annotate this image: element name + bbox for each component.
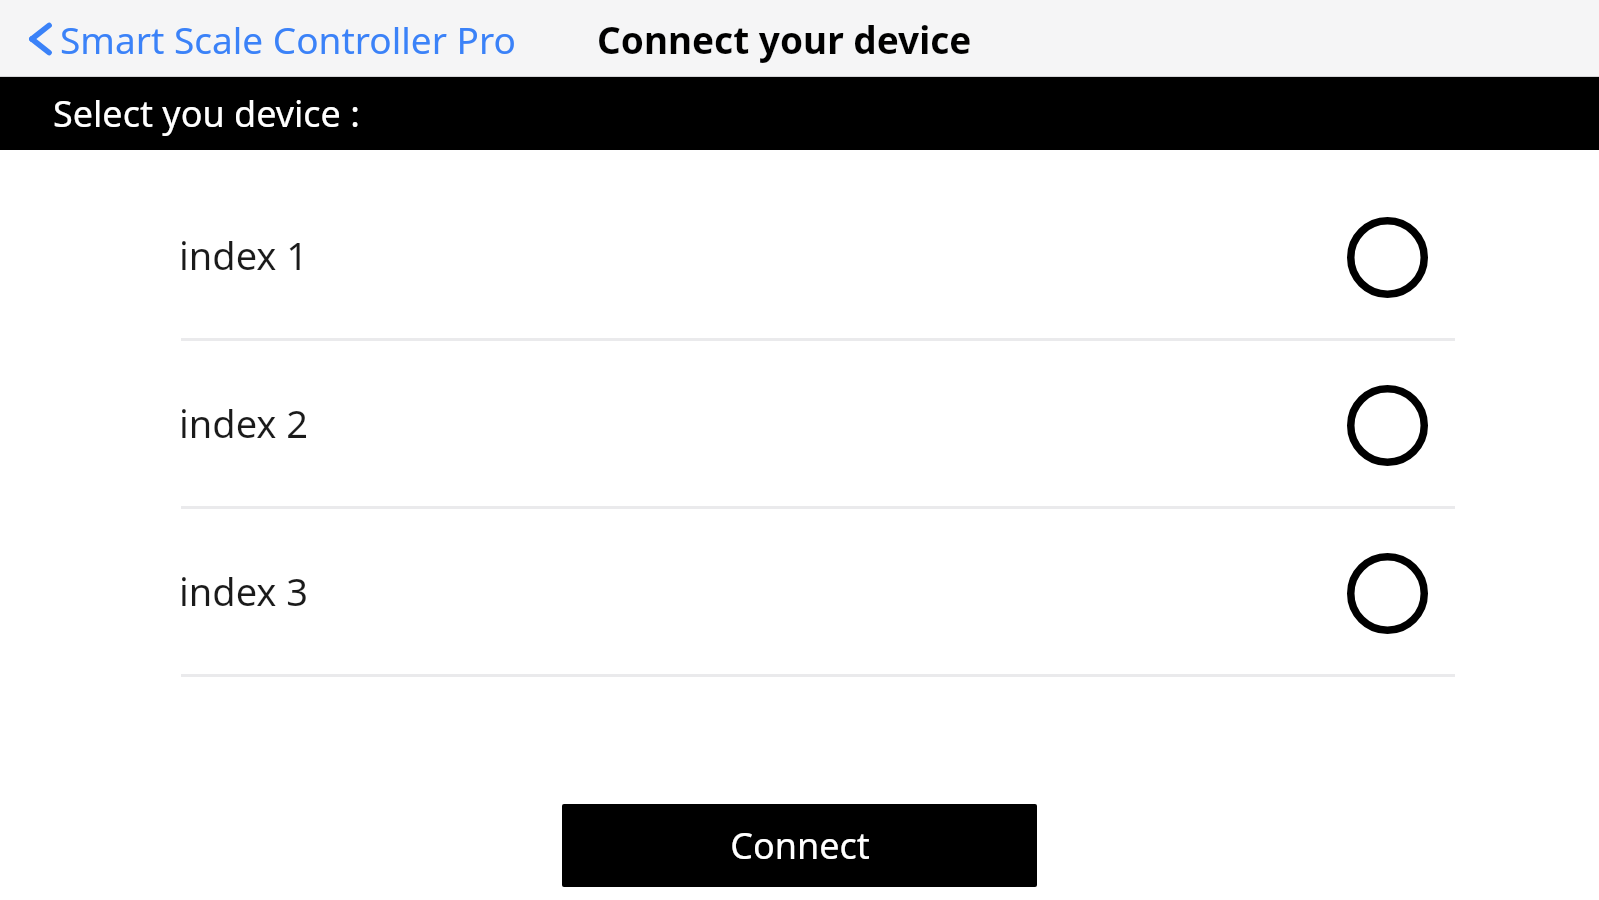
button[interactable]: Select index 1 [1325,195,1449,319]
staticText: Select you device : [53,89,360,138]
button[interactable]: index 3 [0,509,1599,677]
button[interactable]: Select index 3 [1325,531,1449,655]
button[interactable]: Connect [562,804,1037,887]
staticText: Connect your device [597,14,972,64]
staticText: Smart Scale Controller Pro [60,14,516,64]
staticText: index 1 [179,229,309,281]
staticText: Connect [730,821,870,870]
staticText: index 3 [179,565,309,617]
button[interactable]: Smart Scale Controller Pro [0,0,528,77]
staticText: index 2 [179,397,309,449]
button[interactable]: Select index 2 [1325,363,1449,487]
button[interactable]: index 1 [0,173,1599,341]
button[interactable]: index 2 [0,341,1599,509]
